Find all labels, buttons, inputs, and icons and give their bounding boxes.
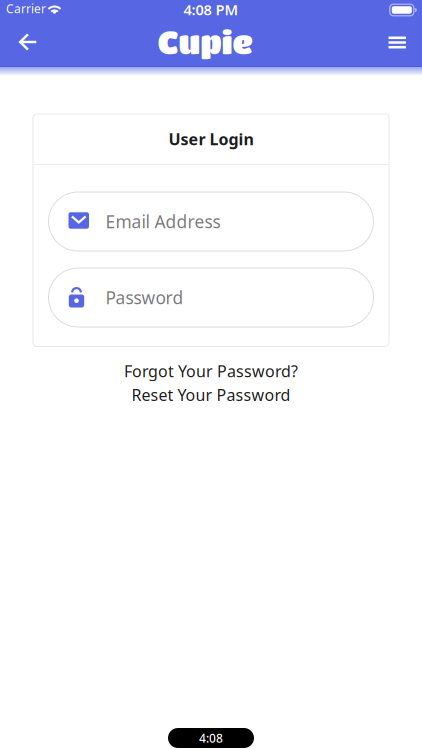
button[interactable] [388,37,422,49]
staticText: Cupie [157,23,252,60]
staticText: 4:08 PM [183,0,238,19]
button[interactable]: Password [48,268,373,327]
staticText: Forgot Your Password? [124,360,298,382]
button[interactable]: Reset Your Password [131,384,290,405]
staticText: User Login [168,128,253,150]
button[interactable]: Forgot Your Password? [124,360,298,382]
staticText: Carrier [6,0,46,16]
staticText: Password [105,286,183,309]
staticText: Reset Your Password [131,384,290,405]
button[interactable]: Email Address [48,192,373,251]
staticText: 4:08 [199,730,223,746]
staticText: Email Address [105,210,220,233]
button[interactable] [0,34,37,52]
